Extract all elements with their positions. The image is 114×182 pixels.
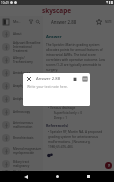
staticText: Adjuvant Breastline International Treatm… — [13, 41, 42, 53]
staticText: Answer 2.88 — [36, 76, 61, 82]
button[interactable]: Amiodarone — [0, 66, 43, 79]
staticText: Answer — [46, 34, 62, 40]
button[interactable]: Add note — [104, 17, 113, 26]
staticText: Mineral magnesium myeloperoxide — [13, 147, 42, 155]
button[interactable]: Antiphospholipid — [0, 92, 43, 105]
staticText: Biliary tract malignancy — [13, 160, 42, 168]
staticText: • Venous drainage Superficial only = 0 D… — [48, 106, 82, 120]
button[interactable]: Help — [105, 162, 112, 169]
button[interactable]: Library — [3, 19, 9, 25]
staticText: Bronchiectasis — [13, 136, 34, 140]
button[interactable]: Close — [25, 75, 32, 82]
staticText: Anaphylaxis — [13, 84, 30, 88]
button[interactable]: Biliary tract malignancy — [0, 157, 43, 170]
button[interactable]: Filter — [28, 19, 34, 25]
button[interactable]: Arteriovenous malformation — [0, 118, 43, 131]
staticText: Mo.. — [13, 19, 21, 24]
staticText: Answer 2.88 — [51, 19, 77, 25]
button[interactable]: Home — [52, 171, 63, 182]
button[interactable]: Mineral magnesium myeloperoxide — [0, 144, 43, 157]
button[interactable]: Recents — [83, 171, 94, 182]
button[interactable]: Anaphylaxis — [0, 79, 43, 92]
button[interactable]: Adjuvant Breastline International Treatm… — [0, 40, 43, 53]
staticText: Reference(s) — [46, 123, 69, 128]
staticText: skyscape — [42, 6, 72, 15]
staticText: Antiphospholipid — [13, 97, 38, 101]
staticText: Arthroscopy — [13, 110, 31, 114]
button[interactable]: Allergic/Tracheostomy — [0, 53, 43, 66]
staticText: Arteriovenous malformation — [13, 121, 33, 129]
button[interactable]: Bladder cancer — [0, 170, 43, 171]
button[interactable]: Delete note — [71, 75, 78, 82]
staticText: 10:49 — [1, 1, 9, 5]
button[interactable]: Back — [20, 171, 31, 182]
staticText: Write your text note here. — [27, 84, 68, 89]
button[interactable]: Bronchiectasis — [0, 131, 43, 144]
button[interactable]: About — [0, 27, 43, 40]
staticText: ? — [108, 163, 110, 169]
staticText: Bladder cancer — [13, 170, 35, 171]
staticText: About — [13, 32, 22, 36]
button[interactable]: Favourite — [94, 17, 103, 26]
button[interactable]: Save note — [81, 75, 88, 82]
button[interactable]: Arthroscopy — [0, 105, 43, 118]
button[interactable]: Search — [35, 19, 41, 25]
staticText: • Spetzler RF, Martin NA. A proposed gra… — [48, 130, 108, 149]
staticText: NOTE — [105, 20, 112, 24]
staticText: Allergic/Tracheostomy — [13, 56, 42, 64]
staticText: The Spetzler-Martin grading system alloc… — [46, 43, 111, 72]
staticText: Amiodarone — [13, 71, 31, 75]
button[interactable]: External link — [46, 151, 53, 158]
